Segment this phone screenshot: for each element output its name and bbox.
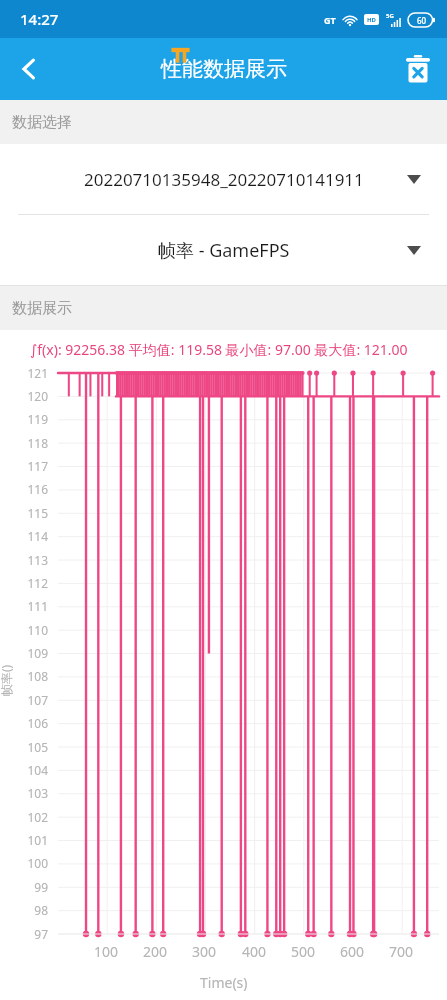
staticText: 112 — [27, 575, 48, 591]
staticText: Time(s) — [200, 973, 248, 992]
staticText: 119 — [27, 411, 48, 427]
staticText: 5G — [386, 12, 394, 20]
staticText: 110 — [27, 622, 48, 638]
staticText: 108 — [27, 668, 48, 684]
staticText: 帧率 - GameFPS — [158, 238, 290, 263]
staticText: 帧率() — [0, 664, 14, 696]
staticText: 116 — [27, 481, 48, 497]
staticText: 700 — [389, 942, 414, 961]
staticText: 109 — [27, 645, 48, 661]
staticText: 数据展示 — [12, 299, 72, 318]
staticText: ∫f(x): 92256.38 平均值: 119.58 最小值: 97.00 最… — [30, 340, 433, 359]
staticText: 100 — [27, 855, 48, 871]
staticText: 120 — [27, 388, 48, 404]
staticText: 数据选择 — [12, 113, 72, 132]
staticText: 500 — [291, 942, 316, 961]
staticText: 300 — [192, 942, 217, 961]
staticText: 118 — [27, 435, 48, 451]
button[interactable]: 帧率 - GameFPS — [0, 215, 447, 285]
staticText: 400 — [242, 942, 267, 961]
staticText: 111 — [27, 598, 48, 614]
staticText: 101 — [27, 832, 48, 848]
staticText: 121 — [27, 365, 48, 381]
button[interactable]: Back — [0, 40, 58, 98]
staticText: 115 — [27, 505, 48, 521]
staticText: 99 — [34, 879, 48, 895]
button[interactable]: 20220710135948_20220710141911 — [0, 144, 447, 214]
staticText: GT — [324, 14, 336, 26]
staticText: 103 — [27, 785, 48, 801]
staticText: 200 — [143, 942, 168, 961]
staticText: HD — [367, 16, 376, 24]
staticText: 20220710135948_20220710141911 — [84, 168, 364, 191]
staticText: 113 — [27, 552, 48, 568]
staticText: 14:27 — [20, 9, 59, 29]
staticText: 104 — [27, 762, 48, 778]
staticText: 97 — [34, 926, 48, 942]
button[interactable]: Delete — [389, 40, 447, 98]
staticText: 114 — [27, 528, 48, 544]
staticText: 106 — [27, 715, 48, 731]
staticText: 102 — [27, 809, 48, 825]
staticText: 60 — [417, 15, 427, 26]
staticText: 性能数据展示 — [161, 56, 287, 82]
staticText: 107 — [27, 692, 48, 708]
staticText: 100 — [94, 942, 119, 961]
staticText: 98 — [34, 902, 48, 918]
staticText: 117 — [27, 458, 48, 474]
staticText: 600 — [340, 942, 365, 961]
staticText: 105 — [27, 739, 48, 755]
